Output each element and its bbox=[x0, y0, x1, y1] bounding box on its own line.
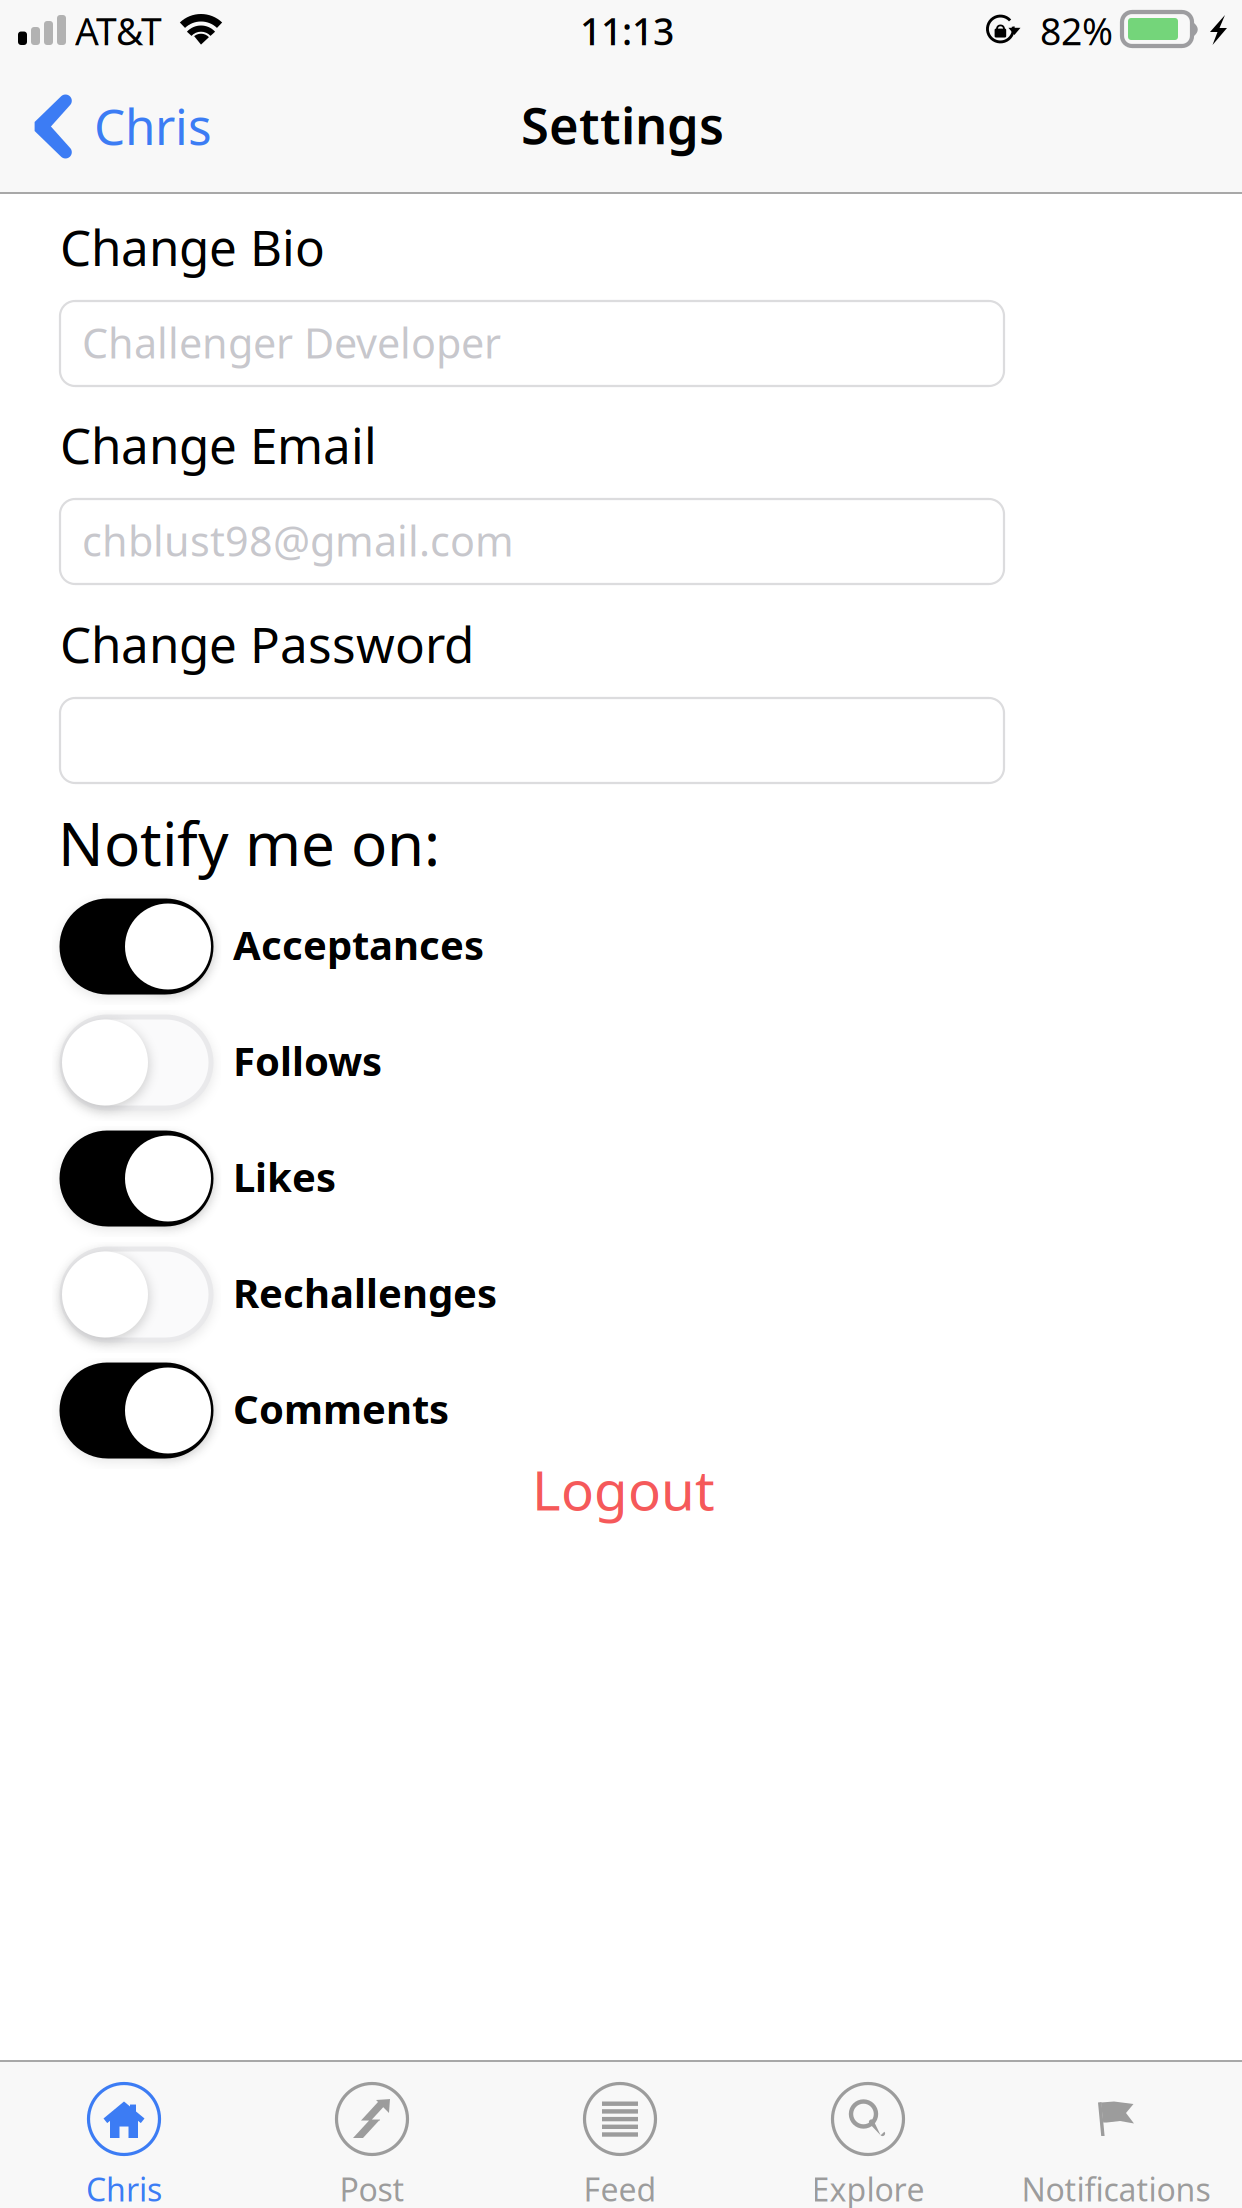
staticText: Change Password bbox=[60, 611, 474, 676]
button[interactable]: Logout bbox=[526, 1439, 786, 1517]
staticText: Notifications bbox=[1021, 2168, 1210, 2208]
staticText: Likes bbox=[233, 1150, 336, 1203]
staticText: Comments bbox=[233, 1382, 449, 1435]
button[interactable]: Acceptances bbox=[60, 899, 1242, 995]
staticText: Challenger Developer bbox=[82, 315, 501, 370]
staticText: Explore bbox=[811, 2168, 924, 2208]
button[interactable]: Rechallenges bbox=[60, 1247, 1242, 1343]
button[interactable]: Feed bbox=[496, 2062, 744, 2208]
staticText: Change Bio bbox=[60, 214, 325, 279]
staticText: Acceptances bbox=[233, 918, 484, 971]
staticText: Feed bbox=[583, 2168, 656, 2208]
button[interactable]: Bio bbox=[60, 301, 1004, 386]
button[interactable]: Email bbox=[60, 499, 1004, 584]
button[interactable]: Likes bbox=[60, 1131, 1242, 1227]
button[interactable]: Password bbox=[60, 698, 1004, 783]
staticText: Rechallenges bbox=[233, 1266, 497, 1319]
staticText: Settings bbox=[521, 91, 724, 158]
staticText: Chris bbox=[86, 2168, 162, 2208]
staticText: Notify me on: bbox=[58, 803, 440, 883]
staticText: AT&T bbox=[75, 6, 162, 56]
staticText: Follows bbox=[233, 1034, 382, 1087]
staticText: Change Email bbox=[60, 412, 377, 477]
button[interactable]: Notifications bbox=[992, 2062, 1240, 2208]
button[interactable]: Chris bbox=[0, 71, 215, 191]
staticText: Post bbox=[339, 2168, 404, 2208]
button[interactable]: Follows bbox=[60, 1015, 1242, 1111]
button[interactable]: Post bbox=[248, 2062, 496, 2208]
button[interactable]: Chris bbox=[0, 2062, 248, 2208]
staticText: Logout bbox=[532, 1453, 715, 1526]
staticText: 82% bbox=[1040, 6, 1113, 56]
staticText: chblust98@gmail.com bbox=[82, 513, 514, 568]
button[interactable]: Explore bbox=[744, 2062, 992, 2208]
button[interactable]: Comments bbox=[60, 1363, 1242, 1459]
staticText: Chris bbox=[94, 93, 212, 158]
staticText: 11:13 bbox=[580, 6, 674, 56]
